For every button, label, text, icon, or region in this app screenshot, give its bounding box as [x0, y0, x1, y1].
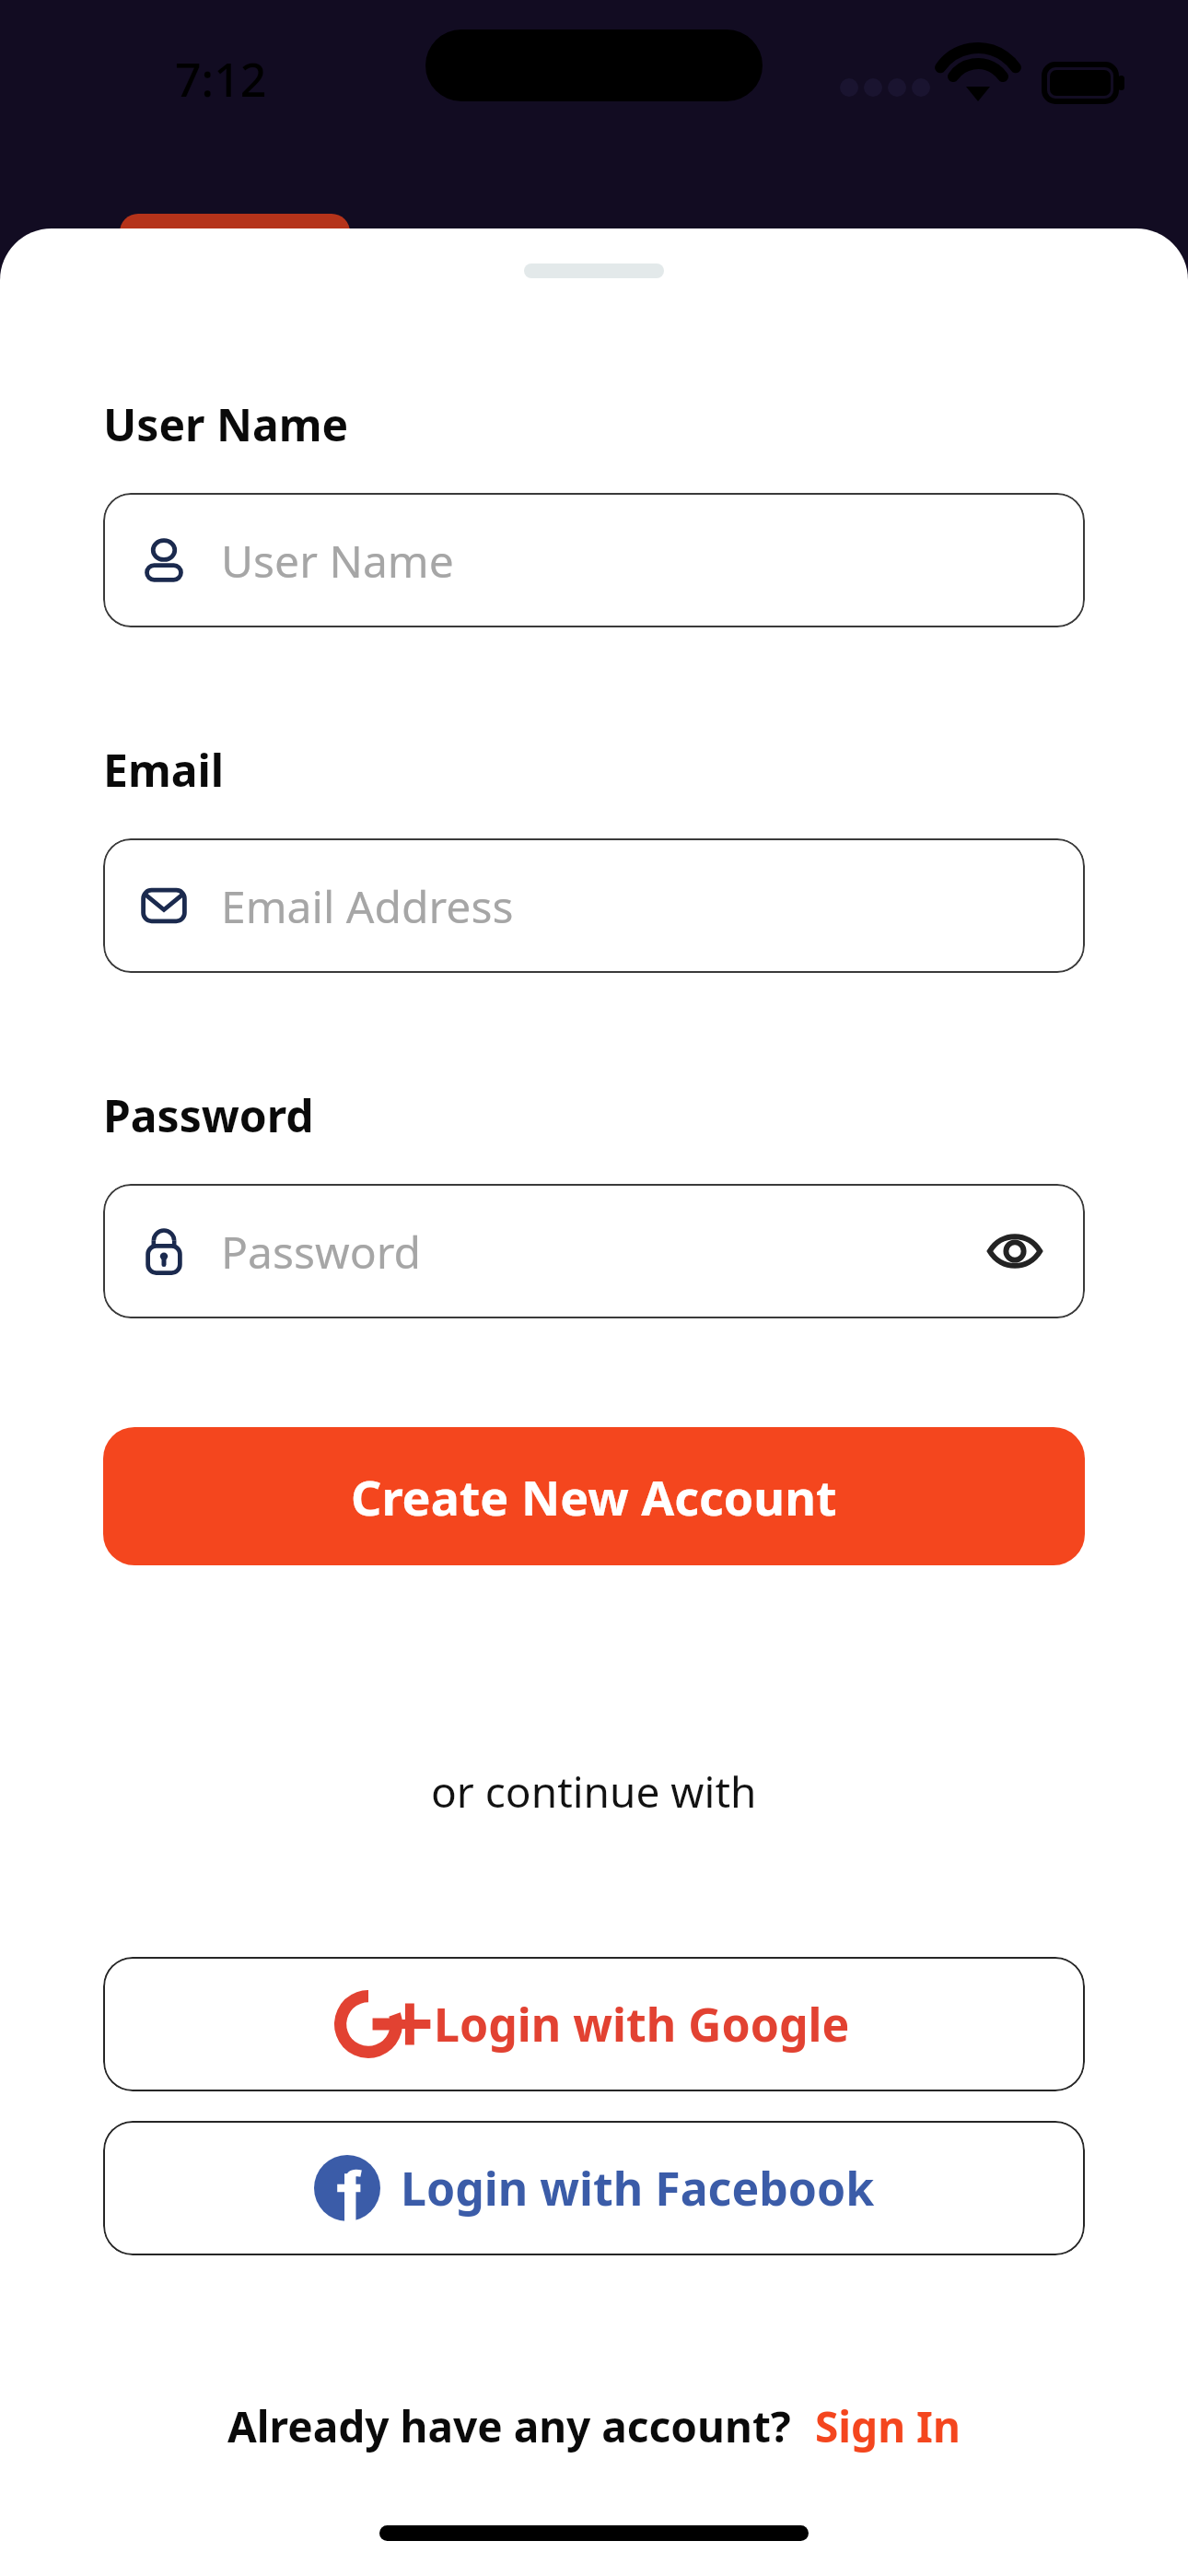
staticText: Email [103, 740, 225, 800]
staticText: Already have any account? [227, 2397, 791, 2455]
staticText: Login with Google [434, 1993, 850, 2055]
staticText: Login with Facebook [401, 2157, 875, 2219]
staticText: Password [103, 1085, 314, 1145]
staticText: Create New Account [351, 1464, 837, 1529]
button[interactable]: Create New Account [103, 1427, 1085, 1565]
button[interactable]: Login with Google [103, 1957, 1085, 2091]
staticText: or continue with [431, 1762, 757, 1821]
button[interactable]: Password [103, 1184, 1085, 1318]
staticText: Password [221, 1222, 982, 1282]
staticText: Sign In [815, 2397, 961, 2455]
button[interactable]: Show password [982, 1218, 1048, 1284]
button[interactable]: Sign In [815, 2397, 961, 2455]
staticText: 7:12 [175, 48, 267, 111]
staticText: User Name [103, 394, 349, 454]
button[interactable]: Email Address [103, 838, 1085, 973]
button[interactable]: User Name [103, 493, 1085, 627]
staticText: User Name [221, 531, 1048, 591]
button[interactable]: Login with Facebook [103, 2121, 1085, 2255]
staticText: Email Address [221, 876, 1048, 936]
